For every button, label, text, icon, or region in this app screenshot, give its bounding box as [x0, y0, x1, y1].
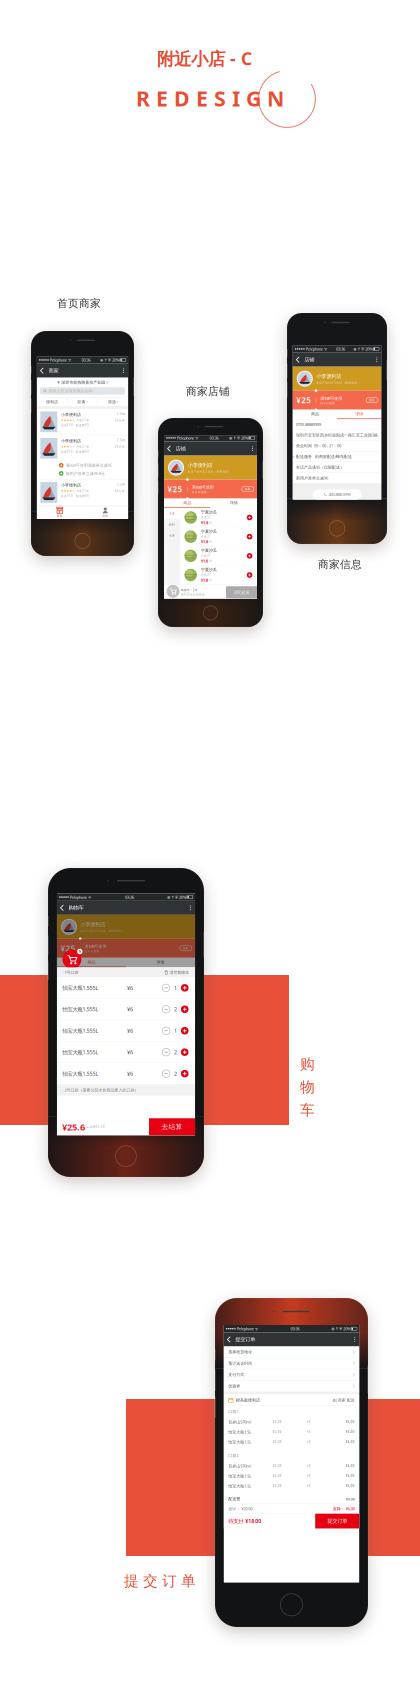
- button[interactable]: 0755-88889999: [286, 419, 388, 430]
- staticText: ¥6: [127, 1070, 133, 1077]
- staticText: 26分钟: [115, 489, 125, 493]
- staticText: 店铺: [175, 445, 185, 452]
- button[interactable]: More: [350, 1334, 359, 1345]
- staticText: 小李便利店: [316, 373, 341, 379]
- staticText: ¥2.00: [273, 1430, 282, 1434]
- button[interactable]: 商品: [164, 499, 210, 508]
- button[interactable]: 我的: [82, 505, 128, 519]
- staticText: 起送¥10 · 配送费¥3: [61, 450, 89, 453]
- button[interactable]: 去结算: [149, 1118, 195, 1135]
- button[interactable]: 距离: [67, 397, 98, 407]
- button[interactable]: Increase: [180, 1004, 189, 1014]
- staticText: ¥2.00: [273, 1420, 282, 1424]
- button[interactable]: 新用户首单立减¥6: [286, 473, 388, 483]
- button[interactable]: 支付方式: [224, 1369, 359, 1381]
- button[interactable]: Back: [293, 354, 303, 365]
- button[interactable]: Increase: [180, 1047, 189, 1057]
- button[interactable]: 选择收货地址: [224, 1346, 359, 1358]
- button[interactable]: Decrease: [161, 1047, 171, 1057]
- staticText: /斤: [208, 521, 212, 524]
- button[interactable]: Decrease: [161, 1069, 171, 1078]
- button[interactable]: 优惠券: [224, 1381, 359, 1392]
- staticText: 03:36: [336, 346, 345, 352]
- button[interactable]: 配送服务 由商家配送/蜂鸟配送: [286, 451, 388, 462]
- staticText: 需¥20元起送商品: [181, 593, 205, 596]
- button[interactable]: 400-888-9999: [313, 489, 361, 500]
- staticText: 支付方式: [228, 1372, 244, 1377]
- button[interactable]: 便利店: [37, 397, 67, 407]
- staticText: ᯤ: [254, 1326, 259, 1331]
- staticText: ⊕ ↑ ⛨ 20%: [331, 1326, 350, 1331]
- button[interactable]: 水果: [164, 530, 180, 541]
- button[interactable]: 干果: [164, 508, 180, 519]
- staticText: 搜索入驻店铺及商品名称: [48, 388, 92, 393]
- button[interactable]: 20元起送: [226, 586, 257, 598]
- staticText: 购物车: [68, 905, 83, 911]
- button[interactable]: Increase: [180, 1026, 189, 1035]
- button[interactable]: 详情: [210, 499, 257, 508]
- staticText: ᯤ: [323, 346, 328, 352]
- button[interactable]: 筛选: [98, 397, 128, 407]
- button[interactable]: Add: [245, 532, 254, 541]
- button[interactable]: Decrease: [161, 1026, 171, 1035]
- button[interactable]: 详情: [337, 410, 381, 419]
- staticText: ⊕ ↑ ⛨ 20%: [229, 435, 248, 440]
- button[interactable]: Decrease: [161, 1004, 171, 1014]
- button[interactable]: 提交订单: [315, 1513, 359, 1528]
- button[interactable]: Cart: [165, 584, 180, 599]
- staticText: 深圳市前海路嘉实产业园: [61, 380, 105, 385]
- button[interactable]: 领取: [180, 946, 192, 951]
- button[interactable]: Increase: [180, 1069, 189, 1078]
- button[interactable]: Back: [164, 443, 174, 454]
- button[interactable]: Decrease: [161, 983, 171, 993]
- button[interactable]: Add: [245, 551, 254, 560]
- button[interactable]: 详情: [126, 958, 195, 967]
- staticText: 口袋1: [228, 1409, 238, 1414]
- button[interactable]: 饮料: [164, 519, 180, 530]
- staticText: 满¥30可使用: [320, 395, 342, 401]
- button[interactable]: 预计送达时间: [224, 1358, 359, 1369]
- button[interactable]: Back: [37, 365, 47, 376]
- button[interactable]: Back: [224, 1334, 234, 1345]
- staticText: 03:36: [125, 894, 134, 900]
- staticText: 新用户首单立减¥6: [296, 475, 328, 480]
- button[interactable]: 商品: [293, 410, 337, 419]
- staticText: 提交订单: [327, 1518, 347, 1524]
- staticText: 配送费: [228, 1496, 240, 1501]
- button[interactable]: 清空购物车: [164, 970, 189, 975]
- button[interactable]: More: [186, 902, 195, 913]
- button[interactable]: Increase: [180, 983, 189, 993]
- staticText: 小李便利店: [187, 462, 212, 468]
- staticText: ×3: [307, 1484, 311, 1488]
- button[interactable]: 搜索入驻店铺及商品名称: [37, 387, 128, 397]
- button[interactable]: Cart: [60, 948, 83, 971]
- button[interactable]: Back: [57, 902, 67, 914]
- staticText: 配送服务 由商家配送/蜂鸟配送: [296, 454, 352, 459]
- button[interactable]: Add: [245, 513, 254, 522]
- button[interactable]: 商品: [57, 958, 126, 967]
- button[interactable]: 本店产品满¥5（仅限配送）: [286, 462, 388, 473]
- button[interactable]: 商家: [37, 505, 82, 519]
- button[interactable]: More: [119, 365, 128, 376]
- staticText: ¥1.8: [201, 539, 208, 544]
- staticText: 车: [300, 1101, 315, 1119]
- staticText: ¥6.00: [346, 1474, 355, 1478]
- button[interactable]: Add: [245, 571, 254, 579]
- staticText: 筛选: [108, 399, 116, 404]
- staticText: 详情: [156, 960, 164, 965]
- staticText: 领取: [369, 398, 375, 402]
- staticText: 本店产品均4.5元起（新鲜现货）: [80, 929, 124, 932]
- staticText: 口袋2: [228, 1453, 238, 1458]
- button[interactable]: 领取: [242, 487, 254, 492]
- button[interactable]: 深圳市宝安区西乡街道固戍一路汇宝工业园3栋: [286, 430, 388, 441]
- staticText: 03:36: [81, 357, 90, 363]
- staticText: 怡宝大瓶1.555L: [62, 1070, 98, 1077]
- button[interactable]: More: [248, 443, 257, 454]
- staticText: · 2号口袋（需要分装水饮商品要入此口袋）: [62, 1087, 138, 1093]
- button[interactable]: 领取: [366, 398, 378, 403]
- button[interactable]: 营业时间 09：00 - 21：00: [286, 441, 388, 451]
- staticText: 起送¥10 · 配送费¥3: [61, 423, 89, 427]
- staticText: 20元起送: [233, 590, 249, 595]
- button[interactable]: More: [372, 354, 381, 365]
- button[interactable]: 深圳市前海路嘉实产业园: [37, 378, 128, 387]
